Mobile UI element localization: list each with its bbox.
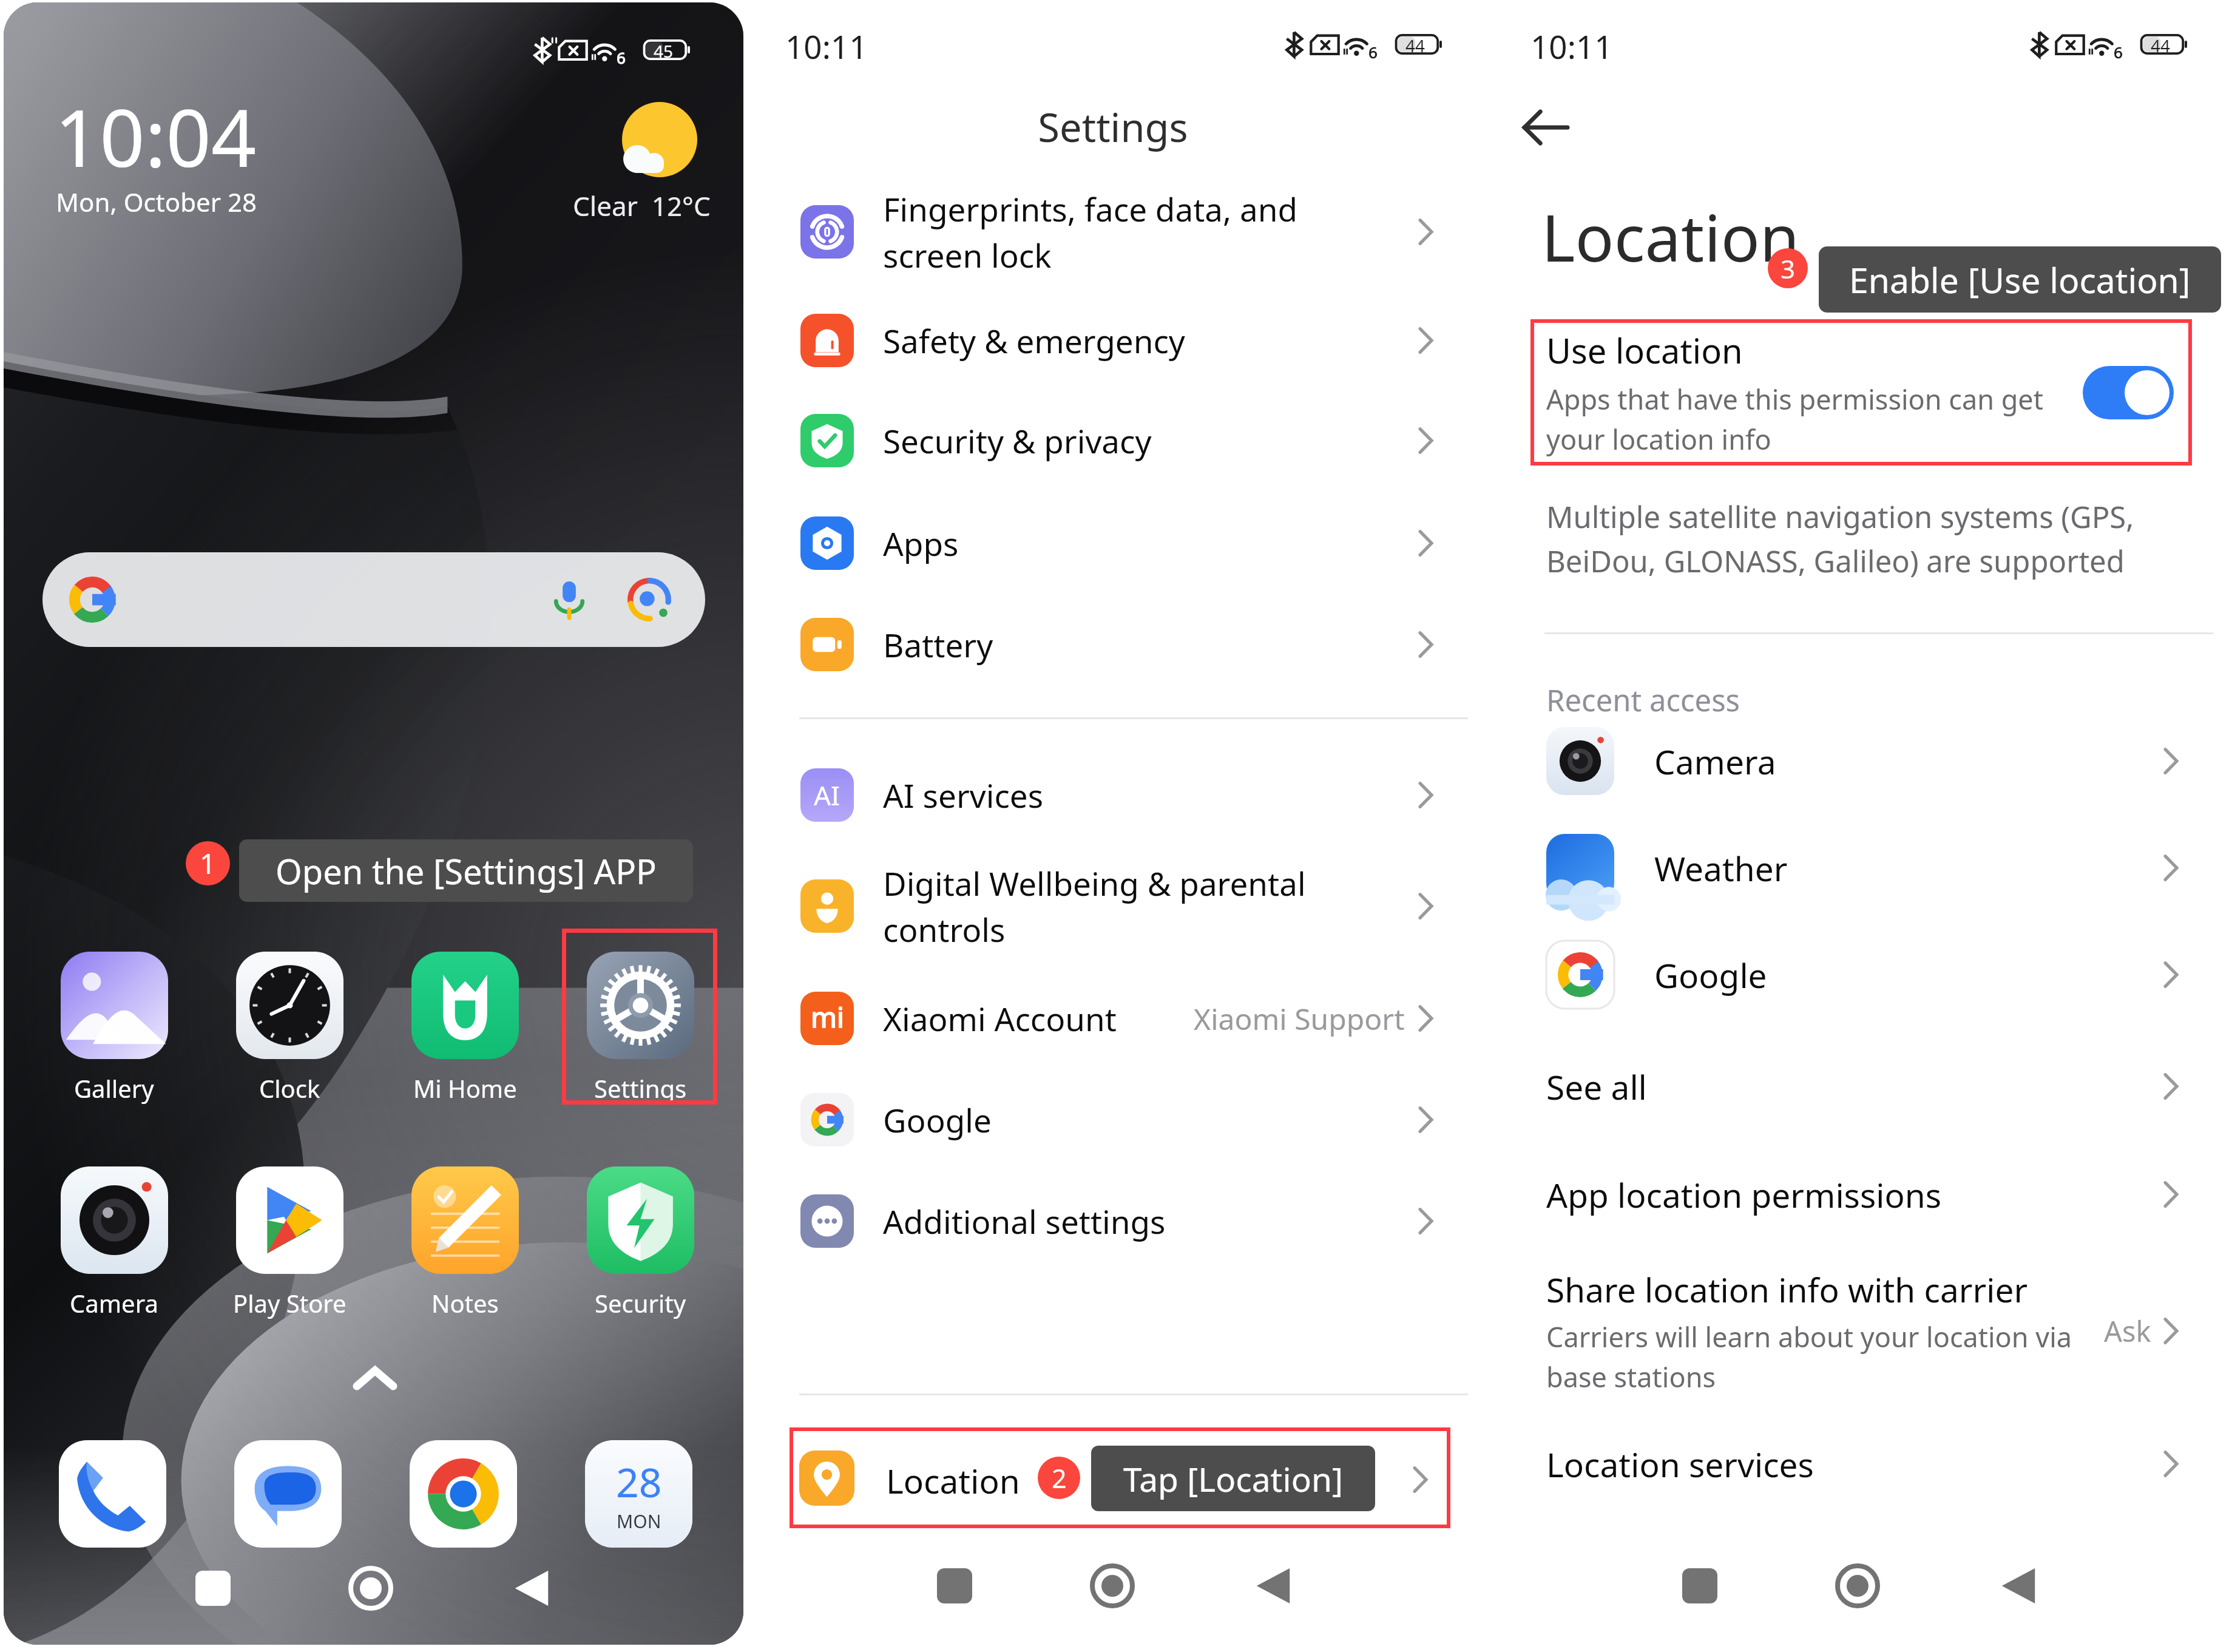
staticText: 10:11	[785, 24, 868, 68]
staticText: AI	[814, 777, 840, 813]
button[interactable]: Battery	[745, 590, 1481, 699]
staticText: MON	[617, 1509, 661, 1534]
other: Open app drawer	[353, 1366, 397, 1391]
button[interactable]: Fingerprints, face data, and screen lock	[745, 177, 1481, 286]
button[interactable]: mi	[745, 964, 1481, 1073]
staticText: Mon, October 28	[56, 184, 257, 219]
button[interactable]: Recents	[177, 1549, 249, 1628]
staticText: 6	[1368, 41, 1378, 63]
staticText: Fingerprints, face data, and screen lock	[883, 187, 1360, 277]
button[interactable]: Location services	[1490, 1413, 2226, 1515]
staticText: Enable [Use location]	[1849, 256, 2191, 303]
staticText: Play Store	[233, 1287, 347, 1319]
button[interactable]: Back	[1237, 1546, 1310, 1625]
staticText: Xiaomi Account	[883, 997, 1184, 1040]
staticText: Weather	[1654, 845, 2163, 891]
button[interactable]: Use location	[1530, 319, 2192, 465]
staticText: Safety & emergency	[883, 319, 1409, 362]
button[interactable]: See all	[1490, 1035, 2226, 1137]
button[interactable]: Back	[495, 1549, 568, 1628]
button[interactable]: Calendar	[585, 1440, 692, 1548]
button[interactable]: Additional settings	[745, 1166, 1481, 1276]
staticText: 44	[2151, 34, 2171, 57]
staticText: Notes	[431, 1287, 499, 1319]
button[interactable]: Messages	[234, 1440, 342, 1548]
staticText: Xiaomi Support	[1194, 999, 1405, 1038]
staticText: Location	[1541, 193, 1800, 280]
staticText: Camera	[70, 1287, 158, 1319]
staticText: Camera	[1654, 739, 2163, 784]
staticText: mi	[811, 998, 844, 1036]
staticText: Gallery	[74, 1072, 154, 1105]
staticText: Multiple satellite navigation systems (G…	[1546, 496, 2171, 581]
button[interactable]: Search	[42, 552, 705, 647]
staticText: Share location info with carrier	[1546, 1267, 2028, 1312]
button[interactable]: Location	[790, 1427, 1450, 1528]
button[interactable]: Play Store	[216, 1166, 363, 1319]
staticText: Settings	[745, 100, 1481, 154]
staticText: 10:11	[1530, 24, 1613, 68]
staticText: Battery	[883, 623, 1409, 666]
button[interactable]: Security	[567, 1166, 714, 1319]
button[interactable]: Back	[1505, 91, 1585, 164]
button[interactable]: Apps	[745, 489, 1481, 598]
staticText: Clear 12°C	[573, 188, 711, 224]
staticText: Use location	[1546, 327, 1743, 373]
staticText: Apps that have this permission can get y…	[1546, 381, 2065, 458]
staticText: Settings	[594, 1072, 687, 1105]
staticText: Location	[886, 1458, 1020, 1503]
staticText: Ask	[2104, 1312, 2151, 1350]
button[interactable]: Phone	[59, 1440, 166, 1548]
staticText: 10:04	[55, 83, 257, 190]
staticText: Google	[1654, 952, 2163, 998]
staticText: Additional settings	[883, 1199, 1409, 1243]
staticText: 28	[616, 1454, 662, 1509]
button[interactable]: Notes	[391, 1166, 538, 1319]
button[interactable]: Chrome	[410, 1440, 517, 1548]
staticText: Carriers will learn about your location …	[1546, 1318, 2089, 1395]
button[interactable]: Home	[334, 1549, 407, 1628]
button[interactable]: Safety & emergency	[745, 286, 1481, 395]
button[interactable]: Weather	[1490, 814, 2226, 921]
button[interactable]: Back	[1982, 1546, 2055, 1625]
staticText: Recent access	[1546, 680, 1740, 720]
staticText: Tap [Location]	[1123, 1456, 1344, 1501]
button[interactable]: Home	[1821, 1546, 1894, 1625]
staticText: Mi Home	[413, 1072, 517, 1105]
button[interactable]: Mi Home	[391, 952, 538, 1105]
button[interactable]: Gallery	[41, 952, 188, 1105]
button[interactable]: AI	[745, 740, 1481, 850]
button[interactable]: Clock	[216, 952, 363, 1105]
button[interactable]: Camera	[1490, 708, 2226, 814]
staticText: Apps	[883, 521, 1409, 565]
button[interactable]: Use location toggle	[2083, 366, 2174, 419]
staticText: 1	[200, 844, 216, 882]
staticText: AI services	[883, 773, 1409, 817]
button[interactable]: Recents	[918, 1546, 991, 1625]
staticText: See all	[1546, 1064, 2163, 1109]
staticText: 6	[2114, 41, 2123, 63]
staticText: 3	[1781, 251, 1796, 286]
staticText: App location permissions	[1546, 1172, 2163, 1217]
staticText: Digital Wellbeing & parental controls	[883, 861, 1360, 951]
staticText: 2	[1052, 1460, 1067, 1496]
staticText: Location services	[1546, 1441, 2163, 1487]
button[interactable]: Camera	[41, 1166, 188, 1319]
button[interactable]: Security & privacy	[745, 386, 1481, 495]
button[interactable]: Digital Wellbeing & parental controls	[745, 851, 1481, 961]
button[interactable]: Share location info with carrier	[1490, 1255, 2226, 1407]
button[interactable]: Google	[1490, 921, 2226, 1028]
staticText: 45	[654, 39, 674, 63]
staticText: Google	[883, 1098, 1409, 1142]
staticText: Security & privacy	[883, 419, 1409, 462]
staticText: 6	[617, 47, 626, 68]
staticText: Clock	[259, 1072, 320, 1105]
button[interactable]: Settings	[567, 952, 714, 1105]
button[interactable]: Home	[1076, 1546, 1149, 1625]
button[interactable]: Google	[745, 1065, 1481, 1174]
staticText: Open the [Settings] APP	[276, 848, 657, 894]
button[interactable]: Recents	[1663, 1546, 1736, 1625]
staticText: 44	[1405, 34, 1425, 57]
button[interactable]: App location permissions	[1490, 1143, 2226, 1245]
staticText: Security	[595, 1287, 686, 1319]
